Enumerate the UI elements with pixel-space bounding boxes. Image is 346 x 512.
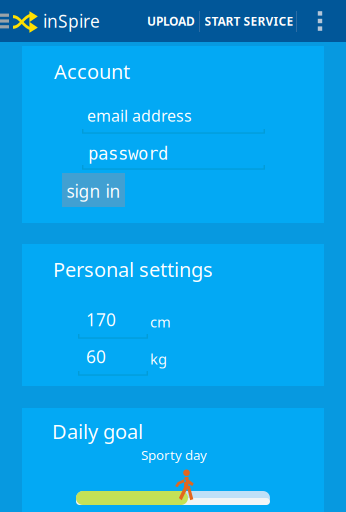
staticText: password: [88, 144, 168, 164]
staticText: email address: [87, 105, 192, 126]
button[interactable]: Menu: [0, 0, 9, 42]
staticText: sign in: [66, 179, 120, 202]
staticText: inSpire: [43, 9, 100, 32]
staticText: 170: [86, 308, 116, 331]
staticText: START SERVICE: [204, 13, 293, 29]
button[interactable]: UPLOAD: [147, 0, 195, 42]
staticText: Daily goal: [52, 418, 143, 445]
button[interactable]: START SERVICE: [205, 0, 293, 42]
staticText: cm: [150, 312, 171, 331]
staticText: UPLOAD: [147, 13, 195, 29]
staticText: Personal settings: [53, 256, 213, 283]
button[interactable]: inSpire: [13, 1, 100, 43]
staticText: 60: [86, 345, 106, 368]
staticText: kg: [150, 349, 167, 368]
button[interactable]: More options: [299, 0, 341, 42]
staticText: Account: [54, 58, 130, 85]
staticText: Sporty day: [141, 446, 207, 464]
button[interactable]: sign in: [62, 173, 125, 207]
